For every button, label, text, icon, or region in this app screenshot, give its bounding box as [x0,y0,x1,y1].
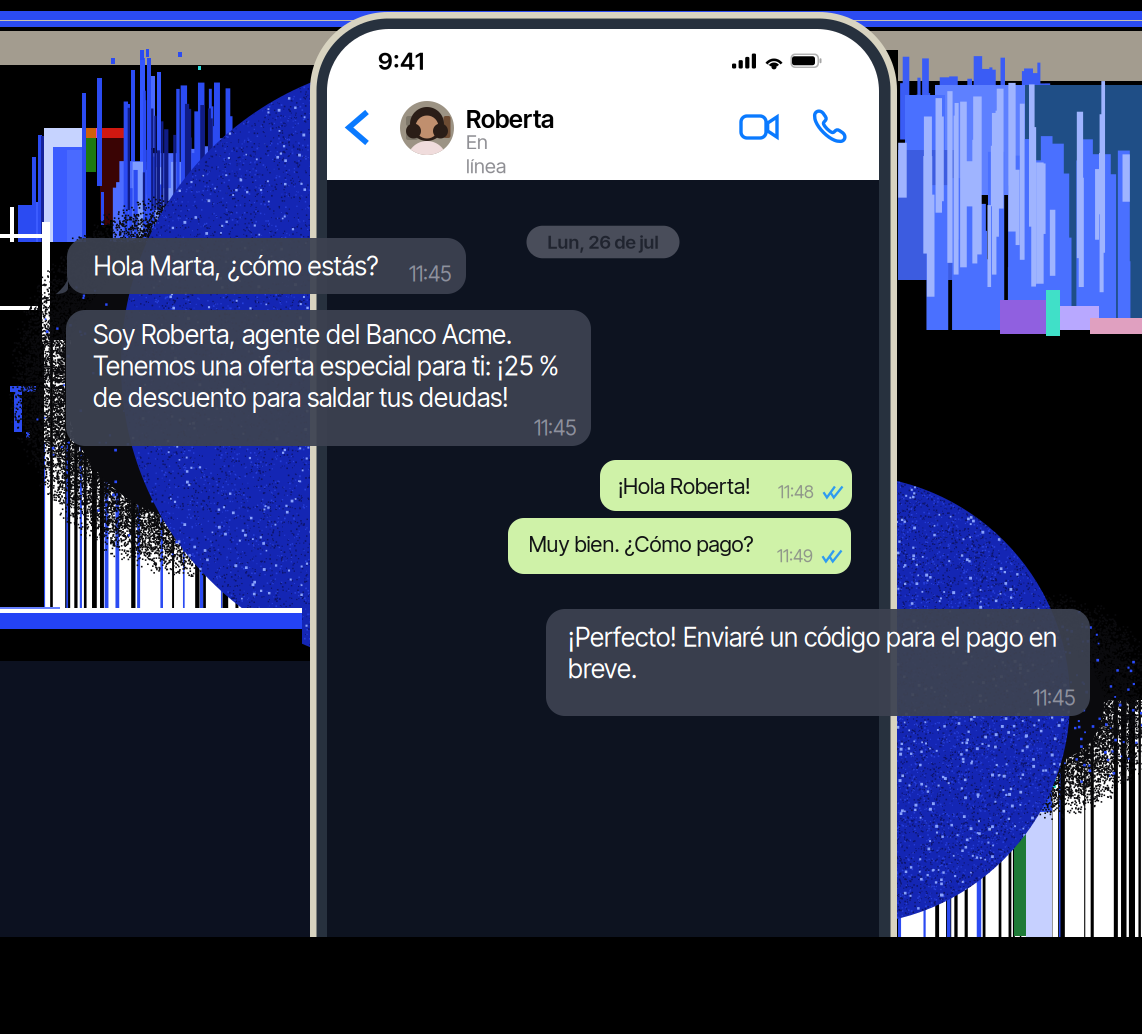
staticText: 11:48 [778,481,814,502]
button[interactable]: Voice call [799,97,861,155]
staticText: Roberta [466,104,554,134]
staticText: Muy bien. ¿Cómo pago? [528,531,753,557]
button[interactable]: Video call [728,98,790,156]
staticText: 11:49 [777,545,813,566]
button[interactable]: Back [333,98,383,157]
staticText: En [466,130,488,154]
staticText: 11:45 [409,261,451,286]
staticText: 11:45 [1033,685,1075,710]
staticText: Soy Roberta, agente del Banco Acme. Tene… [93,319,559,413]
staticText: línea [466,154,506,178]
staticText: 9:41 [378,46,424,75]
staticText: ¡Perfecto! Enviaré un código para el pag… [568,621,1057,684]
staticText: Lun, 26 de jul [547,231,658,253]
staticText: Hola Marta, ¿cómo estás? [93,250,378,282]
staticText: ¡Hola Roberta! [618,473,750,499]
staticText: 11:45 [534,415,576,440]
